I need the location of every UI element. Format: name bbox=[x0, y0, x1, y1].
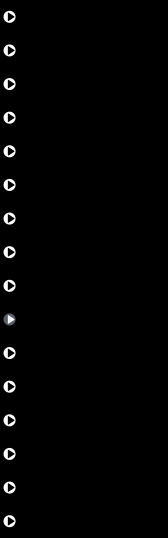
button[interactable]: Play bbox=[0, 437, 168, 471]
button[interactable]: Play bbox=[0, 370, 168, 403]
button[interactable]: Play bbox=[0, 134, 168, 168]
button[interactable]: Play bbox=[0, 0, 168, 34]
button[interactable]: Play bbox=[0, 67, 168, 101]
button[interactable]: Play bbox=[0, 168, 168, 202]
button[interactable]: Play bbox=[0, 336, 168, 370]
button[interactable]: Play bbox=[0, 202, 168, 235]
button[interactable]: Play bbox=[0, 101, 168, 134]
button[interactable]: Play bbox=[0, 269, 168, 303]
button[interactable]: Now playing bbox=[0, 303, 168, 336]
button[interactable]: Play bbox=[0, 471, 168, 504]
button[interactable]: Play bbox=[0, 403, 168, 437]
button[interactable]: Play bbox=[0, 504, 168, 538]
button[interactable]: Play bbox=[0, 235, 168, 269]
button[interactable]: Play bbox=[0, 34, 168, 67]
